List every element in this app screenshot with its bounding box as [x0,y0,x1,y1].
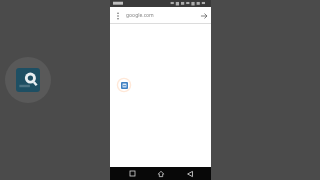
button[interactable]: google.com [126,7,197,24]
button[interactable]: Home [154,167,167,180]
button[interactable]: Image placeholder [121,82,128,89]
button[interactable]: App shortcut [5,57,51,103]
staticText: google.com [126,12,154,19]
button[interactable]: Go [197,9,210,22]
button[interactable]: More options [112,10,124,22]
button[interactable]: Back [183,167,196,180]
button[interactable]: Recent apps [126,167,139,180]
